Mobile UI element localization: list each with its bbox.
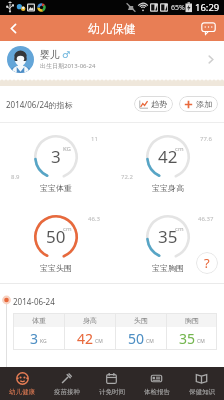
staticText: 72.2 bbox=[121, 173, 133, 181]
button[interactable]: 体检报告 bbox=[134, 367, 179, 400]
button[interactable]: 幼儿健康 bbox=[0, 367, 44, 400]
staticText: 3 bbox=[51, 145, 61, 168]
button[interactable]: 添加 bbox=[179, 96, 218, 112]
button[interactable]: Back bbox=[0, 15, 26, 41]
staticText: 体重 bbox=[32, 316, 46, 325]
staticText: KG bbox=[40, 338, 47, 345]
staticText: ♂ bbox=[62, 50, 71, 60]
staticText: 35 bbox=[158, 225, 178, 248]
staticText: 46.37 bbox=[198, 215, 214, 223]
staticText: CM bbox=[95, 338, 103, 345]
button[interactable]: 婴儿 bbox=[7, 41, 217, 77]
staticText: 8.9 bbox=[11, 173, 20, 181]
staticText: KG bbox=[63, 145, 71, 153]
staticText: 16:29 bbox=[195, 1, 220, 14]
staticText: 2014/06/24的指标 bbox=[6, 99, 73, 110]
staticText: 11 bbox=[91, 135, 98, 143]
staticText: 幼儿保健 bbox=[88, 21, 136, 36]
staticText: 宝宝身高 bbox=[152, 183, 184, 193]
staticText: cm bbox=[63, 225, 72, 233]
staticText: 42 bbox=[77, 329, 94, 348]
staticText: 计免时间 bbox=[99, 388, 125, 396]
staticText: 77.6 bbox=[200, 135, 212, 143]
button[interactable]: 46.3 bbox=[0, 203, 112, 283]
button[interactable]: 疫苗接种 bbox=[44, 367, 89, 400]
button[interactable]: 趋势 bbox=[134, 96, 173, 112]
staticText: 疫苗接种 bbox=[54, 388, 80, 396]
staticText: 胸围 bbox=[185, 316, 199, 325]
button[interactable]: Help bbox=[196, 252, 218, 274]
staticText: 添加 bbox=[196, 99, 212, 109]
staticText: 65% bbox=[171, 3, 185, 13]
staticText: 50 bbox=[128, 329, 145, 348]
staticText: 宝宝胸围 bbox=[152, 263, 184, 273]
staticText: 3 bbox=[30, 329, 39, 348]
button[interactable]: Messages bbox=[199, 19, 217, 37]
staticText: 幼儿健康 bbox=[9, 388, 35, 396]
button[interactable]: 77.6 bbox=[112, 123, 224, 203]
staticText: 42 bbox=[158, 145, 178, 168]
staticText: 体检报告 bbox=[144, 388, 170, 396]
staticText: 宝宝体重 bbox=[40, 183, 72, 193]
staticText: 50 bbox=[46, 225, 66, 248]
button[interactable]: 保健知识 bbox=[179, 367, 224, 400]
staticText: CM bbox=[197, 338, 205, 345]
staticText: 身高 bbox=[83, 316, 97, 325]
button[interactable]: 11 bbox=[0, 123, 112, 203]
staticText: cm bbox=[175, 225, 184, 233]
staticText: 46.3 bbox=[88, 215, 100, 223]
staticText: 宝宝头围 bbox=[40, 263, 72, 273]
staticText: CM bbox=[146, 338, 154, 345]
staticText: 头围 bbox=[134, 316, 148, 325]
button[interactable]: 计免时间 bbox=[89, 367, 134, 400]
staticText: 2014-06-24 bbox=[13, 296, 55, 307]
staticText: ? bbox=[204, 254, 210, 272]
staticText: 趋势 bbox=[151, 99, 167, 109]
staticText: 35 bbox=[179, 329, 196, 348]
staticText: 婴儿 bbox=[40, 48, 60, 61]
button[interactable]: 46.37 bbox=[112, 203, 224, 283]
staticText: 保健知识 bbox=[189, 388, 215, 396]
staticText: cm bbox=[175, 145, 184, 153]
staticText: 出生日期2013-06-24 bbox=[40, 62, 96, 70]
